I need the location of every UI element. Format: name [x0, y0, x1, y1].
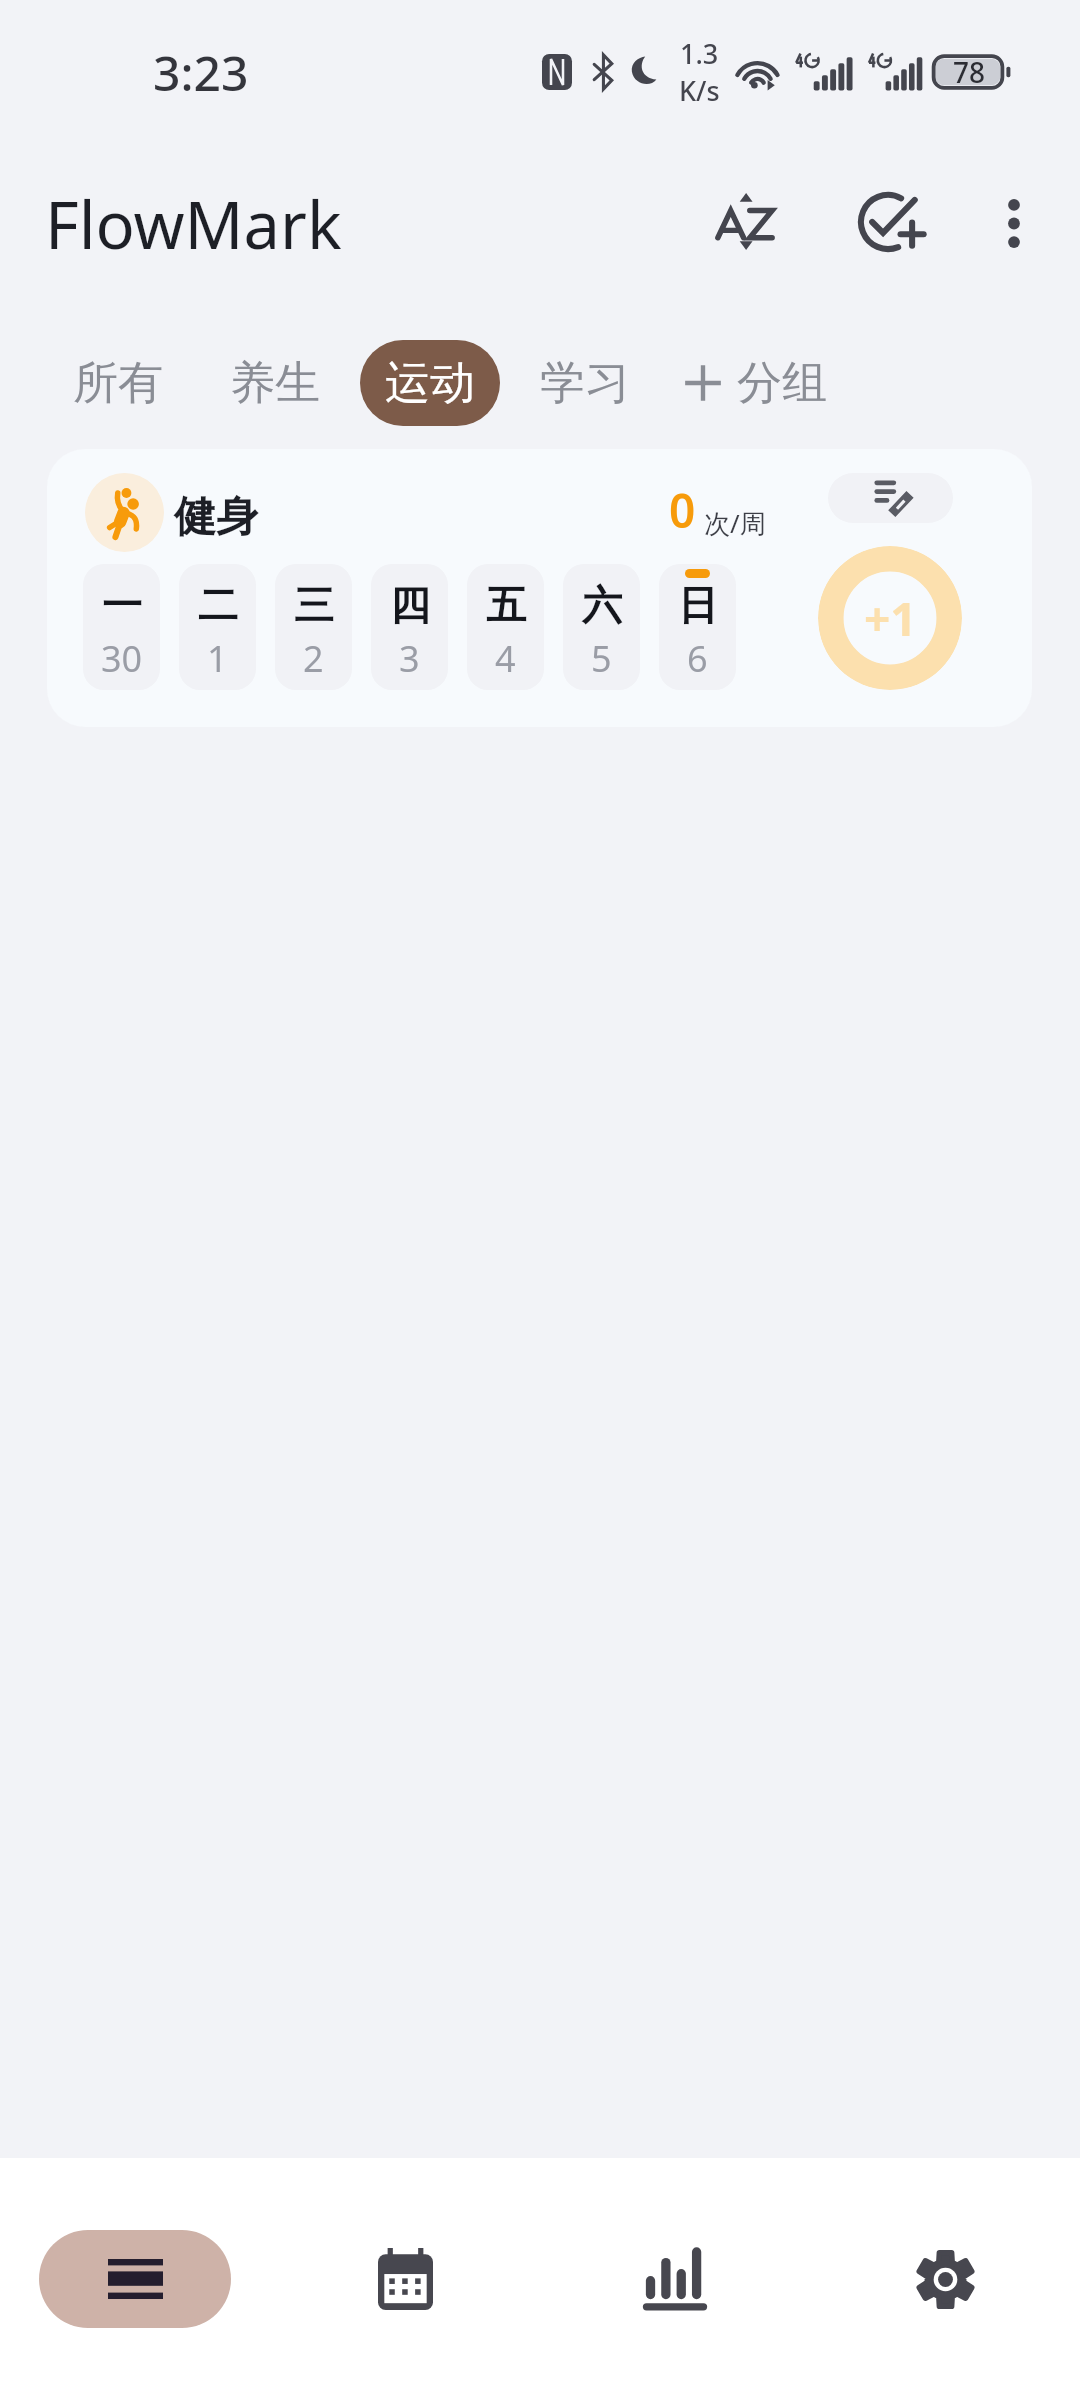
button[interactable]: 养生 [212, 340, 338, 426]
staticText: 30 [101, 634, 143, 683]
button[interactable]: Sort A to Z [690, 166, 800, 276]
staticText: 健身 [174, 491, 258, 544]
staticText: K/s [679, 72, 720, 109]
button[interactable]: 健身 [47, 449, 1032, 727]
staticText: +1 [864, 587, 917, 650]
button[interactable]: Plus one [818, 546, 962, 690]
button[interactable]: More options [962, 171, 1066, 275]
staticText: 六 [582, 580, 622, 630]
staticText: 次/周 [704, 505, 766, 541]
staticText: 3 [399, 634, 420, 683]
staticText: 2 [303, 634, 324, 683]
staticText: FlowMark [45, 180, 342, 269]
staticText: 3:23 [153, 40, 249, 105]
staticText: 1.3 [680, 35, 719, 72]
staticText: 三 [294, 580, 334, 630]
button[interactable]: Settings [896, 2230, 994, 2328]
button[interactable]: 所有 [55, 340, 181, 426]
button[interactable]: Edit note [828, 473, 953, 523]
button[interactable]: 五 [467, 564, 544, 690]
button[interactable]: 日 [659, 564, 736, 690]
staticText: 养生 [230, 355, 320, 412]
button[interactable]: 学习 [522, 340, 648, 426]
button[interactable]: 四 [371, 564, 448, 690]
staticText: 五 [486, 580, 526, 630]
staticText: 日 [678, 580, 718, 630]
staticText: 分组 [737, 355, 827, 412]
staticText: 1 [207, 634, 228, 683]
staticText: 所有 [73, 355, 163, 412]
button[interactable]: 分组 [666, 340, 845, 426]
staticText: 四 [390, 580, 430, 630]
button[interactable]: Habits [39, 2230, 231, 2328]
button[interactable]: 二 [179, 564, 256, 690]
button[interactable]: 一 [83, 564, 160, 690]
button[interactable]: 三 [275, 564, 352, 690]
staticText: 学习 [540, 355, 630, 412]
button[interactable]: 运动 [360, 340, 500, 426]
staticText: 二 [198, 580, 238, 630]
button[interactable]: Add habit [835, 167, 945, 277]
staticText: 5 [591, 634, 612, 683]
staticText: 运动 [385, 355, 475, 412]
staticText: 一 [102, 580, 142, 630]
button[interactable]: Statistics [626, 2230, 724, 2328]
staticText: 6 [687, 634, 708, 683]
staticText: 4 [495, 634, 516, 683]
staticText: 78 [953, 53, 986, 91]
button[interactable]: 六 [563, 564, 640, 690]
staticText: 0 [669, 479, 696, 542]
button[interactable]: Calendar [356, 2230, 454, 2328]
